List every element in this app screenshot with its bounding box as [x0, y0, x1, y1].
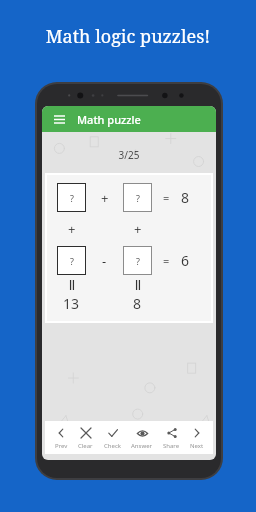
- staticText: -: [102, 252, 107, 270]
- staticText: Math logic puzzles!: [0, 24, 256, 49]
- staticText: Math puzzle: [77, 112, 141, 127]
- button[interactable]: Answer: [129, 426, 154, 450]
- staticText: Check: [104, 442, 121, 450]
- staticText: Clear: [78, 442, 93, 450]
- staticText: 3/25: [42, 148, 216, 162]
- button[interactable]: Clear: [76, 426, 95, 450]
- staticText: Share: [163, 442, 180, 450]
- button[interactable]: Unknown value, tap to enter: [123, 183, 152, 212]
- staticText: ?: [70, 255, 74, 267]
- staticText: =: [163, 190, 170, 205]
- button[interactable]: Check: [102, 426, 123, 450]
- button[interactable]: Prev: [52, 426, 70, 450]
- staticText: 8: [133, 294, 142, 313]
- staticText: +: [68, 220, 76, 238]
- staticText: Next: [190, 442, 204, 450]
- staticText: Prev: [55, 442, 68, 450]
- button[interactable]: Unknown value, tap to enter: [57, 183, 86, 212]
- staticText: 8: [181, 188, 190, 207]
- button[interactable]: Unknown value, tap to enter: [123, 246, 152, 275]
- button[interactable]: Unknown value, tap to enter: [57, 246, 86, 275]
- staticText: +: [134, 220, 142, 238]
- staticText: ?: [136, 192, 140, 204]
- button[interactable]: Open navigation menu: [50, 110, 68, 128]
- staticText: =: [163, 253, 170, 268]
- staticText: 13: [63, 294, 80, 313]
- staticText: +: [101, 189, 109, 207]
- staticText: 6: [181, 251, 190, 270]
- staticText: ?: [136, 255, 140, 267]
- staticText: ?: [70, 192, 74, 204]
- staticText: Answer: [131, 442, 152, 450]
- button[interactable]: Next: [188, 426, 206, 450]
- button[interactable]: Share: [161, 426, 182, 450]
